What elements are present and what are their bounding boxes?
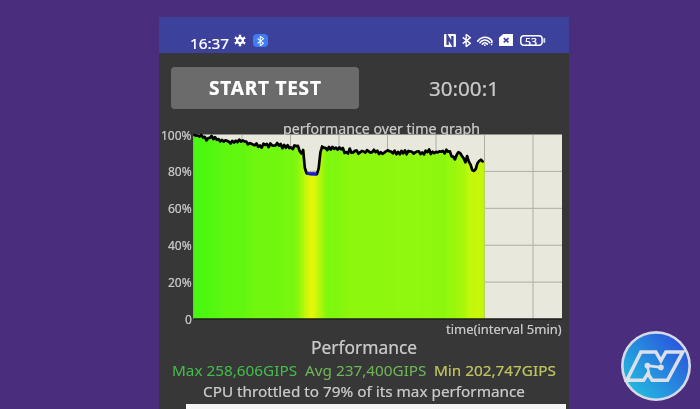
staticText: performance over time graph	[283, 119, 480, 138]
staticText: CPU throttled to 79% of its max performa…	[203, 381, 525, 402]
other: Channel watermark	[621, 331, 691, 401]
staticText: Performance	[311, 335, 418, 359]
staticText: Max 258,606GIPS	[172, 360, 298, 381]
staticText: 53	[525, 35, 538, 46]
staticText: Avg 237,400GIPS	[305, 360, 427, 381]
staticText: 16:37	[190, 33, 230, 54]
staticText: 60%	[168, 200, 192, 216]
staticText: 30:00:1	[429, 74, 499, 102]
staticText: 80%	[168, 163, 192, 179]
button[interactable]: START TEST	[171, 67, 359, 109]
staticText: 100%	[161, 127, 192, 143]
staticText: 0	[185, 311, 192, 327]
staticText: Min 202,747GIPS	[434, 360, 556, 381]
staticText: START TEST	[209, 75, 322, 101]
staticText: time(interval 5min)	[446, 320, 562, 338]
staticText: 40%	[168, 237, 192, 253]
staticText: 20%	[168, 274, 192, 290]
